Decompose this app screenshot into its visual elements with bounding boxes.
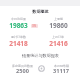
button[interactable] xyxy=(39,33,77,48)
staticText: 上月订单 xyxy=(52,35,64,39)
staticText: 本月销售额 xyxy=(54,64,69,68)
staticText: 库存商品总数量 xyxy=(12,64,33,68)
staticText: 19863 xyxy=(9,21,28,30)
button[interactable]: More info xyxy=(38,65,45,72)
button[interactable]: 3% xyxy=(32,24,37,28)
button[interactable] xyxy=(39,15,77,29)
staticText: 21418 xyxy=(9,39,28,48)
button[interactable] xyxy=(0,50,80,60)
staticText: 今日访问量 xyxy=(11,17,26,21)
staticText: 累计订单数 xyxy=(11,35,26,39)
button[interactable] xyxy=(0,7,80,16)
staticText: 上周期 xyxy=(54,17,63,21)
button[interactable] xyxy=(0,33,37,48)
staticText: 数据概览 xyxy=(32,9,49,14)
button[interactable] xyxy=(42,62,80,75)
button[interactable] xyxy=(0,15,37,29)
staticText: 3% xyxy=(32,24,37,28)
staticText: 2500 xyxy=(16,67,29,75)
staticText: 21416 xyxy=(49,39,68,48)
button[interactable] xyxy=(3,62,41,75)
staticText: 销量统计与数据报表 xyxy=(22,53,59,58)
staticText: 31117 xyxy=(53,67,69,75)
staticText: 19860 xyxy=(49,21,68,30)
